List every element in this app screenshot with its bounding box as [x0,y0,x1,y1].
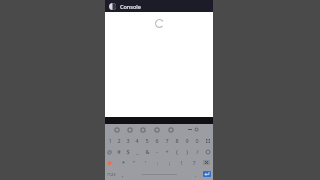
staticText: . [195,171,197,178]
staticText: Console [120,3,141,10]
button[interactable]: Clipboard [202,135,213,146]
staticText: ; [169,159,171,166]
staticText: @ [107,148,112,155]
button[interactable]: Space [127,168,191,180]
button[interactable]: _ [132,146,142,157]
other: App icon [109,3,116,10]
button[interactable]: ) [182,146,192,157]
button[interactable]: / [192,146,202,157]
staticText: 0 [195,137,199,144]
button[interactable]: Switch to letters [105,168,118,180]
button[interactable]: App icon [105,0,213,12]
staticText: ( [176,148,178,155]
button[interactable]: & [142,146,152,157]
button[interactable]: $ [123,146,132,157]
button[interactable]: * [118,157,129,168]
staticText: : [157,159,159,166]
button[interactable]: # [114,146,123,157]
staticText: _ [136,148,139,155]
button[interactable]: Emoji [105,157,118,168]
staticText: 1 [108,137,112,144]
staticText: 4 [135,137,139,144]
button[interactable]: ; [164,157,176,168]
staticText: $ [126,148,130,155]
staticText: ! [181,159,183,166]
button[interactable]: + [162,146,172,157]
button[interactable]: Toolbar item 2 [136,124,150,135]
button[interactable]: 9 [182,135,192,146]
button[interactable]: 1 [105,135,114,146]
staticText: & [145,148,150,155]
staticText: ? [193,159,196,166]
staticText: 5 [145,137,149,144]
staticText: 8 [175,137,179,144]
staticText: 3 [126,137,130,144]
button[interactable]: 2 [114,135,123,146]
staticText: ' [145,159,147,166]
button[interactable]: 6 [152,135,162,146]
button[interactable]: " [129,157,140,168]
staticText: 2 [117,137,121,144]
button[interactable]: 7 [162,135,172,146]
button[interactable]: 0 [192,135,202,146]
staticText: 9 [185,137,189,144]
button[interactable]: More options [178,124,208,135]
button[interactable]: 4 [132,135,142,146]
staticText: 7 [165,137,169,144]
button[interactable]: Next [202,146,213,157]
staticText: / [196,148,199,155]
button[interactable]: ! [176,157,188,168]
button[interactable]: 3 [123,135,132,146]
staticText: " [133,159,136,166]
staticText: 6 [155,137,159,144]
staticText: + [165,148,169,155]
button[interactable]: Comma [118,168,127,180]
staticText: * [122,159,126,166]
button[interactable]: ( [172,146,182,157]
button[interactable]: ? [188,157,200,168]
button[interactable]: Enter [200,168,213,180]
staticText: , [122,171,124,178]
button[interactable]: 5 [142,135,152,146]
button[interactable]: Toolbar item 1 [123,124,136,135]
button[interactable]: Toolbar item 3 [150,124,164,135]
button[interactable]: : [152,157,164,168]
staticText: ) [186,148,188,155]
staticText: ?123 [107,172,116,177]
button[interactable]: Toolbar item 4 [164,124,178,135]
button[interactable]: Toolbar item 0 [110,124,123,135]
staticText: - [156,148,158,155]
staticText: # [117,148,121,155]
button[interactable]: @ [105,146,114,157]
button[interactable]: Backspace [200,157,213,168]
button[interactable]: 8 [172,135,182,146]
